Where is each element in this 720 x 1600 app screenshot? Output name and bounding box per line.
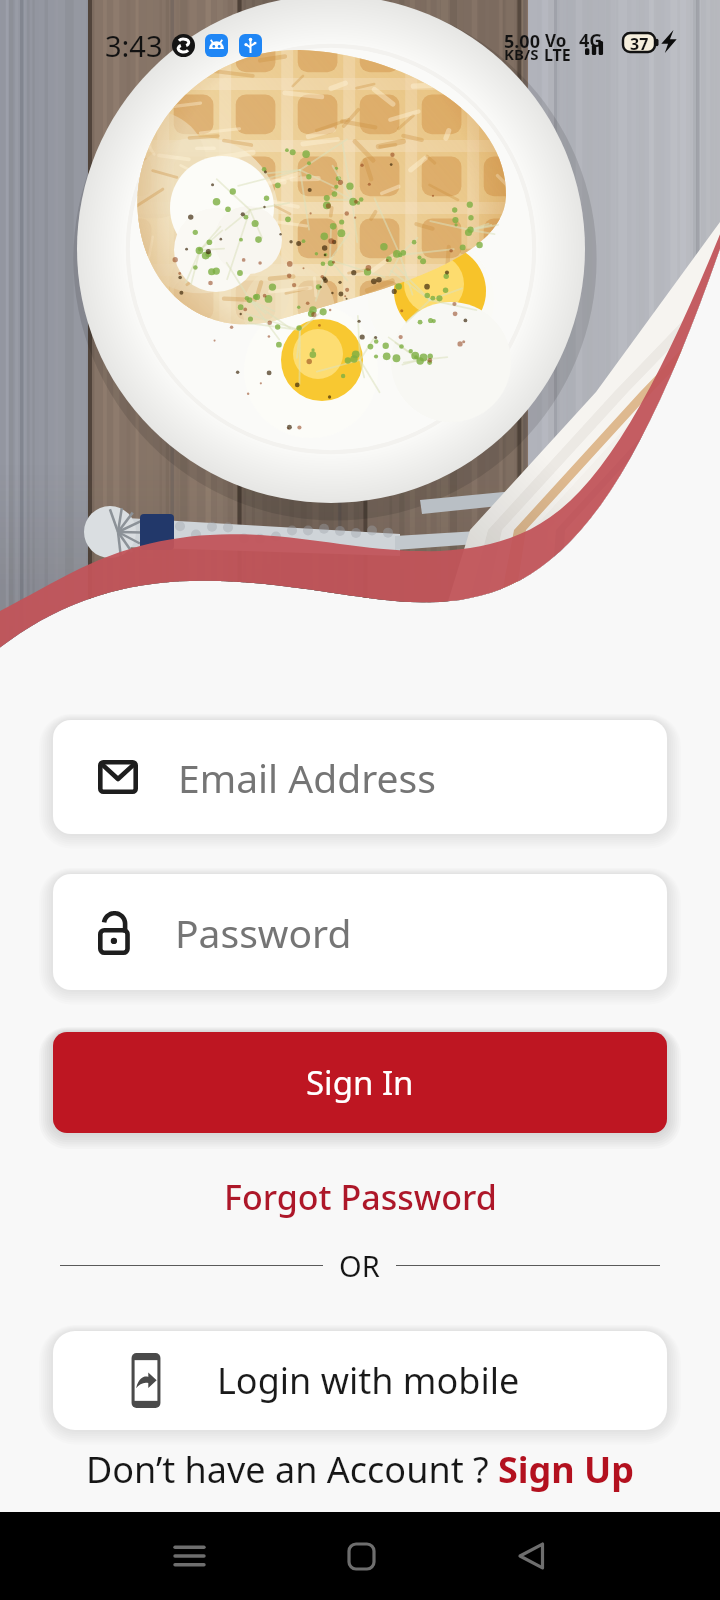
- staticText: 3:43: [105, 26, 163, 65]
- staticText: Login with mobile: [217, 1356, 520, 1405]
- staticText: KB/S: [504, 44, 539, 64]
- button[interactable]: Login with mobile: [53, 1331, 667, 1430]
- staticText: Don’t have an Account ?: [86, 1445, 498, 1494]
- button[interactable]: Email Address: [53, 720, 667, 834]
- button[interactable]: Back: [492, 1520, 570, 1592]
- button[interactable]: Home: [322, 1520, 400, 1592]
- staticText: Sign In: [306, 1060, 414, 1105]
- staticText: Forgot Password: [224, 1174, 497, 1220]
- button[interactable]: Password: [53, 874, 667, 990]
- button[interactable]: Sign Up: [498, 1445, 635, 1494]
- button[interactable]: Recents: [150, 1520, 228, 1592]
- staticText: 5.00: [504, 29, 540, 54]
- staticText: 4G: [579, 28, 603, 53]
- staticText: LTE: [544, 44, 571, 66]
- button[interactable]: Forgot Password: [0, 1168, 720, 1226]
- staticText: Password: [175, 906, 352, 959]
- staticText: OR: [339, 1246, 380, 1285]
- staticText: 37: [630, 33, 649, 52]
- staticText: Email Address: [178, 751, 436, 804]
- button[interactable]: Sign In: [53, 1032, 667, 1133]
- staticText: Sign Up: [498, 1445, 635, 1494]
- staticText: Vo: [545, 29, 567, 52]
